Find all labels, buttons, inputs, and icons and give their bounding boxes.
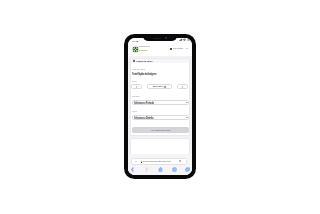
- staticText: AGENDAR TESTE: [136, 59, 153, 62]
- button[interactable]: Governo do Estado do Paraná: [139, 46, 150, 51]
- staticText: saude.pr.gov.br/agendamento: [143, 160, 171, 163]
- button[interactable]: 30/11/2021: [147, 84, 172, 89]
- button[interactable]: Selecione o Período: [132, 100, 189, 105]
- staticText: aA: [135, 160, 138, 162]
- button[interactable]: Abas: [185, 167, 190, 172]
- staticText: Paraná: [139, 48, 148, 51]
- button[interactable]: Ver Vagas Disponíveis: [132, 127, 189, 133]
- staticText: Selecione o Distrito: [134, 116, 154, 120]
- staticText: Período: [132, 95, 140, 98]
- staticText: Português: [173, 47, 184, 50]
- staticText: Data: [132, 80, 137, 83]
- staticText: Teste Rápido de Antígeno: [132, 72, 157, 76]
- button[interactable]: Compartilhar: [158, 167, 163, 172]
- staticText: 10:48: [132, 39, 139, 42]
- staticText: Ver Vagas Disponíveis: [151, 128, 171, 131]
- staticText: Local: [132, 110, 138, 113]
- button[interactable]: Avançar: [144, 167, 149, 172]
- button[interactable]: Voltar: [130, 167, 135, 172]
- button[interactable]: Selecione o Distrito: [132, 115, 189, 120]
- button[interactable]: Dia anterior: [131, 84, 142, 89]
- button[interactable]: Favoritos: [172, 167, 177, 172]
- button[interactable]: Próximo dia: [177, 84, 188, 89]
- staticText: 30/11/2021: [153, 85, 163, 88]
- staticText: Selecione o Período: [134, 101, 154, 105]
- staticText: GOVERNO DO ESTADO: [139, 46, 150, 47]
- button[interactable]: Português: [170, 47, 188, 50]
- button[interactable]: aA: [131, 158, 187, 165]
- staticText: Tipo de Teste: [132, 68, 145, 71]
